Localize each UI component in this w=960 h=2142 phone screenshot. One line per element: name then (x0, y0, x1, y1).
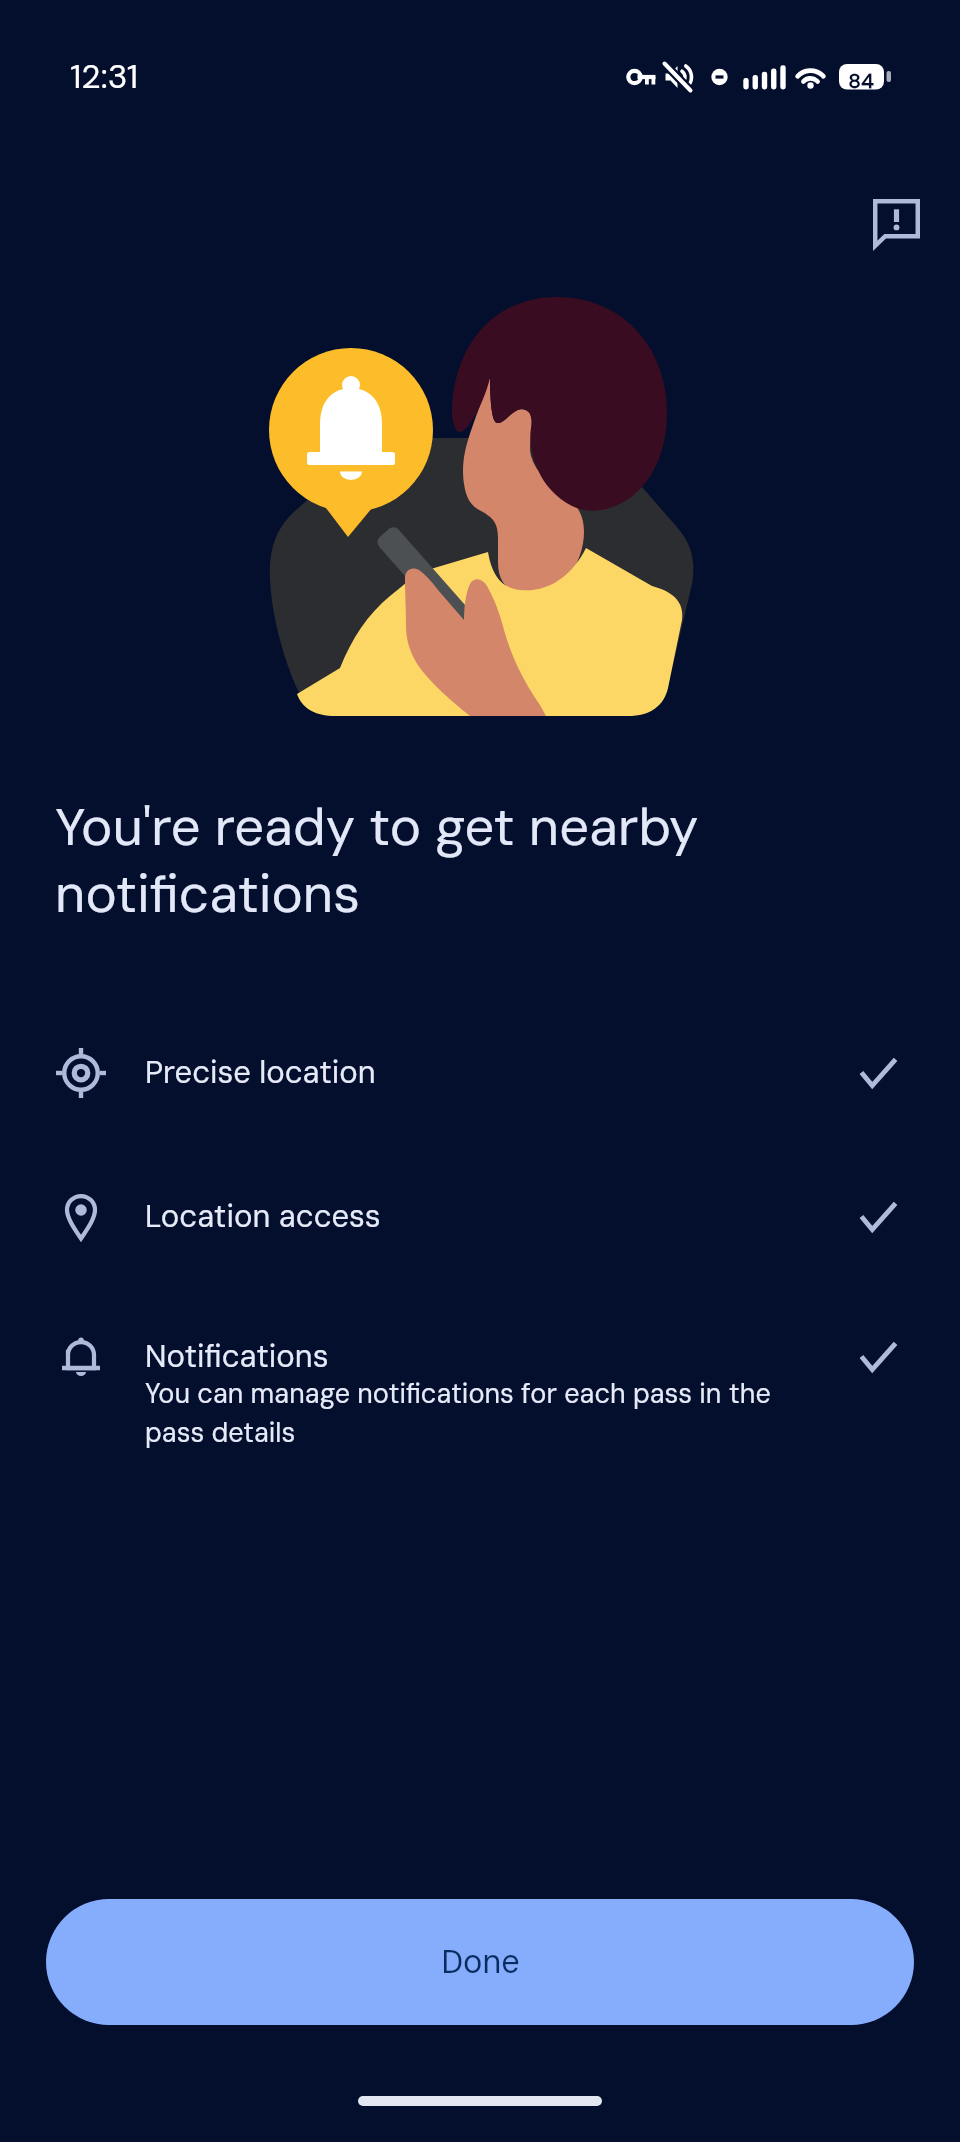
button[interactable]: Location access (24, 1168, 936, 1266)
staticText: Notifications (145, 1336, 329, 1376)
staticText: Done (441, 1941, 520, 1983)
button[interactable]: Precise location (24, 1024, 936, 1122)
button[interactable]: Done (46, 1899, 914, 2025)
staticText: You're ready to get nearby notifications (55, 793, 755, 928)
button[interactable]: Send feedback (848, 175, 944, 271)
staticText: Precise location (145, 1052, 376, 1092)
staticText: 84 (843, 67, 879, 94)
staticText: You can manage notifications for each pa… (145, 1376, 779, 1450)
staticText: Location access (145, 1196, 381, 1236)
staticText: 12:31 (70, 55, 139, 98)
button[interactable]: Notifications (24, 1308, 936, 1470)
